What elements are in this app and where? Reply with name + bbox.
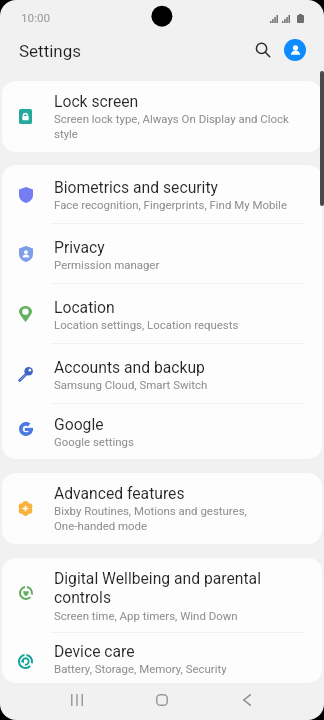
staticText: Location bbox=[54, 298, 115, 316]
staticText: Screen time, App timers, Wind Down bbox=[54, 609, 238, 622]
staticText: Biometrics and security bbox=[54, 178, 218, 196]
button[interactable]: Home bbox=[142, 683, 182, 720]
button[interactable]: Digital Wellbeing and parental controls bbox=[2, 558, 322, 633]
button[interactable]: Location bbox=[2, 284, 322, 344]
button[interactable]: Back bbox=[227, 683, 267, 720]
button[interactable]: Google bbox=[2, 404, 322, 459]
button[interactable]: Recent apps bbox=[57, 683, 97, 720]
staticText: Device care bbox=[54, 642, 135, 660]
button[interactable]: Accounts and backup bbox=[2, 344, 322, 404]
button[interactable]: Account bbox=[278, 33, 312, 67]
button[interactable]: Lock screen bbox=[2, 81, 322, 152]
staticText: Samsung Cloud, Smart Switch bbox=[54, 378, 208, 391]
staticText: Screen lock type, Always On Display and … bbox=[54, 112, 294, 141]
button[interactable]: Biometrics and security bbox=[2, 165, 322, 224]
staticText: Advanced features bbox=[54, 484, 185, 502]
staticText: Accounts and backup bbox=[54, 358, 205, 376]
staticText: Digital Wellbeing and parental controls bbox=[54, 569, 294, 607]
staticText: Battery, Storage, Memory, Security bbox=[54, 662, 227, 675]
staticText: Permission manager bbox=[54, 258, 160, 271]
staticText: Google settings bbox=[54, 435, 134, 448]
staticText: Bixby Routines, Motions and gestures, On… bbox=[54, 504, 294, 533]
staticText: 10:00 bbox=[21, 11, 51, 25]
staticText: Google bbox=[54, 415, 104, 433]
staticText: Location settings, Location requests bbox=[54, 318, 239, 331]
button[interactable]: Device care bbox=[2, 633, 322, 683]
staticText: Face recognition, Fingerprints, Find My … bbox=[54, 198, 287, 211]
staticText: Privacy bbox=[54, 238, 105, 256]
button[interactable]: Advanced features bbox=[2, 473, 322, 544]
staticText: Settings bbox=[19, 41, 82, 61]
staticText: Lock screen bbox=[54, 92, 139, 110]
button[interactable]: Privacy bbox=[2, 224, 322, 284]
button[interactable]: Search bbox=[244, 33, 278, 67]
